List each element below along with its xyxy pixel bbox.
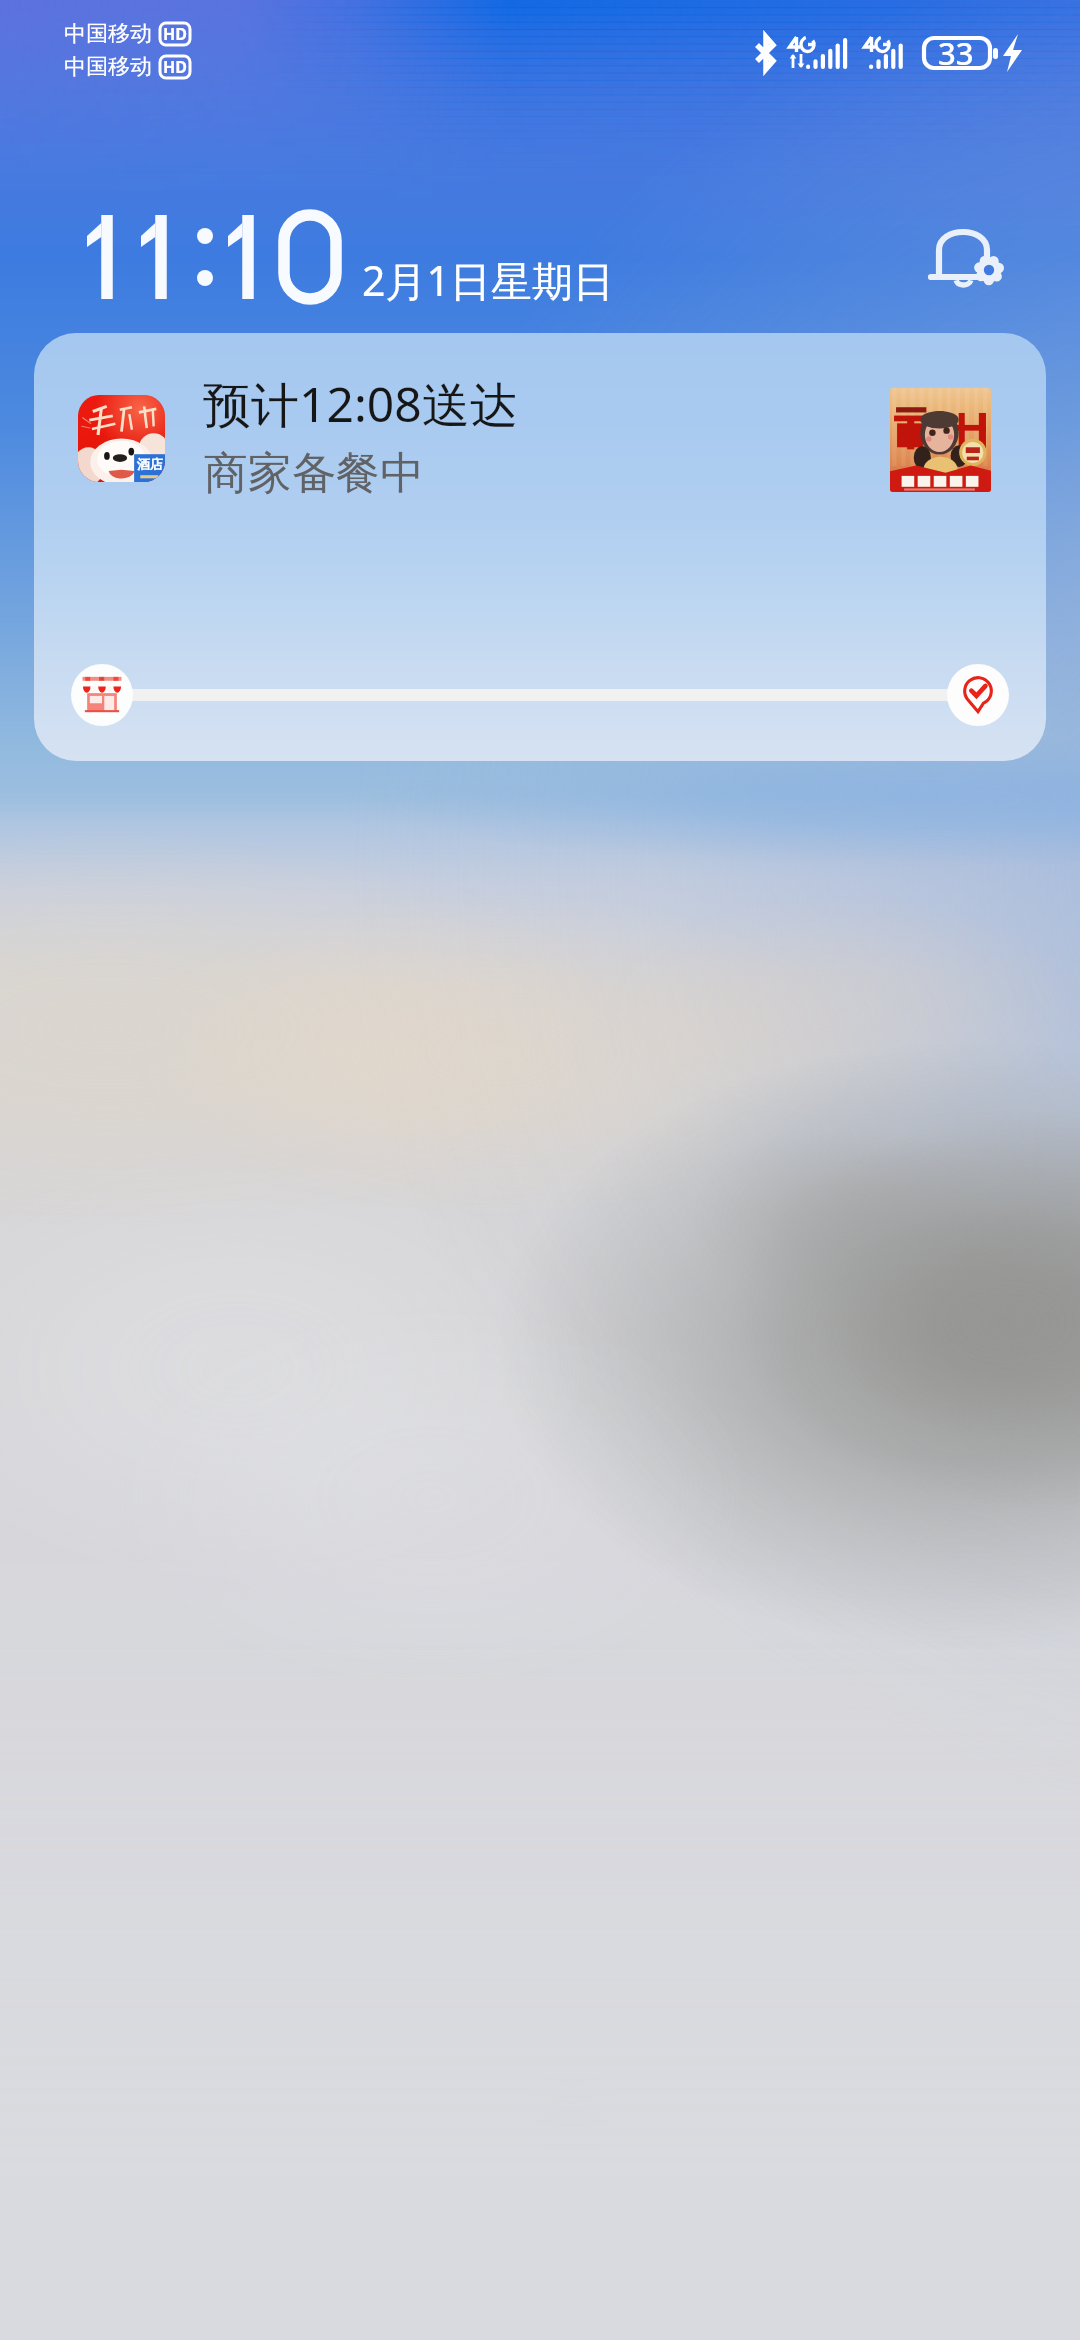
staticText: 中国移动: [64, 20, 152, 48]
staticText: 中国移动: [64, 53, 152, 81]
staticText: 预计12:08送达: [203, 371, 518, 437]
staticText: 2月1日星期日: [362, 252, 614, 308]
staticText: 酒店: [137, 456, 163, 472]
staticText: 33: [938, 32, 974, 74]
button[interactable]: Notification settings: [930, 218, 1020, 308]
staticText: 商家备餐中: [204, 446, 424, 501]
staticText: HD: [163, 23, 187, 45]
button[interactable]: 酒店: [34, 333, 1046, 761]
staticText: HD: [163, 56, 187, 78]
